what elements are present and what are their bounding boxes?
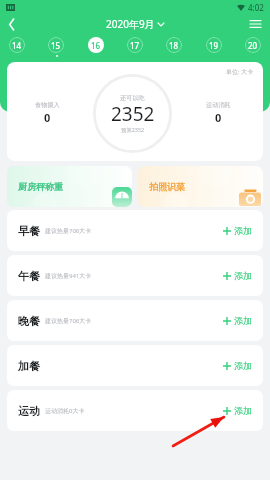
staticText: 添加 <box>234 270 252 281</box>
button[interactable]: 拍照识菜 <box>138 166 263 207</box>
button[interactable]: 19 <box>206 37 222 53</box>
staticText: 20 <box>248 40 258 51</box>
staticText: 建议热量941大卡 <box>45 272 92 280</box>
staticText: 添加 <box>234 360 252 371</box>
button[interactable]: 17 <box>127 37 143 53</box>
staticText: 食物摄入 <box>35 101 60 109</box>
staticText: 2020年9月 <box>106 17 155 31</box>
button[interactable]: 2020年9月 <box>106 17 164 31</box>
staticText: 添加 <box>234 225 252 236</box>
staticText: 17 <box>130 40 140 51</box>
staticText: 添加 <box>234 405 252 416</box>
staticText: 晚餐 <box>18 314 40 328</box>
staticText: 还可以吃 <box>120 94 145 102</box>
button[interactable]: 晚餐 <box>7 300 263 341</box>
staticText: 19 <box>209 40 219 51</box>
staticText: 14 <box>12 40 22 51</box>
staticText: 运动消耗 <box>206 101 231 109</box>
button[interactable]: 16 <box>88 37 104 53</box>
staticText: 2352 <box>111 101 155 127</box>
staticText: 运动消耗0大卡 <box>45 407 85 415</box>
button[interactable]: Back <box>0 13 22 35</box>
staticText: 拍照识菜 <box>149 181 185 192</box>
staticText: 运动 <box>18 404 40 418</box>
button[interactable]: 加餐 <box>7 345 263 386</box>
staticText: 午餐 <box>18 269 40 283</box>
staticText: 添加 <box>234 315 252 326</box>
button[interactable]: 早餐 <box>7 210 263 251</box>
staticText: 4:02 <box>248 2 264 13</box>
button[interactable]: 14 <box>9 37 25 53</box>
staticText: 建议热量706大卡 <box>45 227 92 235</box>
button[interactable]: 运动 <box>7 390 263 431</box>
staticText: 预算2352 <box>121 126 145 133</box>
staticText: 建议热量706大卡 <box>45 317 92 325</box>
staticText: 加餐 <box>18 359 40 373</box>
button[interactable]: Menu <box>244 13 266 35</box>
staticText: 15 <box>51 40 61 51</box>
button[interactable]: 午餐 <box>7 255 263 296</box>
button[interactable]: 20 <box>245 37 261 53</box>
button[interactable]: 15 <box>48 37 64 53</box>
button[interactable]: 厨房秤称重 <box>7 166 132 207</box>
button[interactable]: 18 <box>166 37 182 53</box>
staticText: 16 <box>91 40 101 51</box>
staticText: 0 <box>44 110 51 125</box>
staticText: 18 <box>169 40 179 51</box>
staticText: 单位: 大卡 <box>226 68 254 76</box>
staticText: 早餐 <box>18 224 40 238</box>
staticText: 0 <box>215 110 222 125</box>
staticText: 厨房秤称重 <box>18 181 63 192</box>
